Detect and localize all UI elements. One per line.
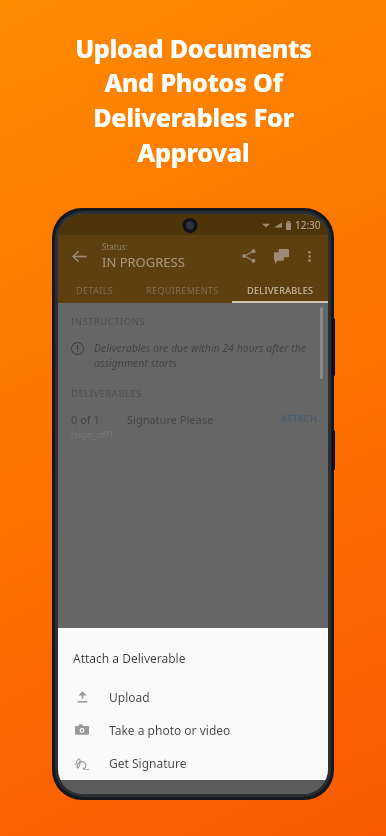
staticText: Take a photo or video: [109, 722, 231, 738]
staticText: 0 of 1: [71, 412, 100, 427]
button[interactable]: Upload: [58, 680, 328, 713]
staticText: Upload Documents And Photos Of Deliverab…: [75, 31, 312, 170]
staticText: ATTACH: [281, 412, 318, 425]
staticText: Upload: [109, 689, 150, 705]
button[interactable]: Back: [66, 243, 92, 269]
staticText: Get Signature: [109, 755, 187, 771]
button[interactable]: Take a photo or video: [58, 713, 328, 746]
staticText: Status:: [102, 241, 128, 252]
button[interactable]: Messages: [268, 243, 294, 269]
button[interactable]: DETAILS: [58, 277, 132, 303]
button[interactable]: Get Signature: [58, 746, 328, 779]
staticText: Signature Please: [127, 412, 214, 427]
staticText: DETAILS: [76, 284, 114, 296]
staticText: DELIVERABLES: [247, 284, 314, 296]
button[interactable]: REQUIREMENTS: [132, 277, 232, 303]
button[interactable]: 0 of 1: [71, 412, 318, 441]
staticText: DELIVERABLES: [71, 387, 143, 400]
button[interactable]: More options: [298, 245, 320, 267]
staticText: INSTRUCTIONS: [71, 315, 146, 328]
button[interactable]: DELIVERABLES: [232, 277, 328, 303]
staticText: IN PROGRESS: [102, 253, 185, 271]
staticText: 12:30: [295, 218, 321, 232]
staticText: REQUIREMENTS: [146, 284, 219, 296]
staticText: (sign_off): [71, 428, 113, 441]
staticText: Deliverables are due within 24 hours aft…: [94, 341, 307, 370]
staticText: Attach a Deliverable: [73, 650, 186, 666]
button[interactable]: Share: [236, 243, 262, 269]
